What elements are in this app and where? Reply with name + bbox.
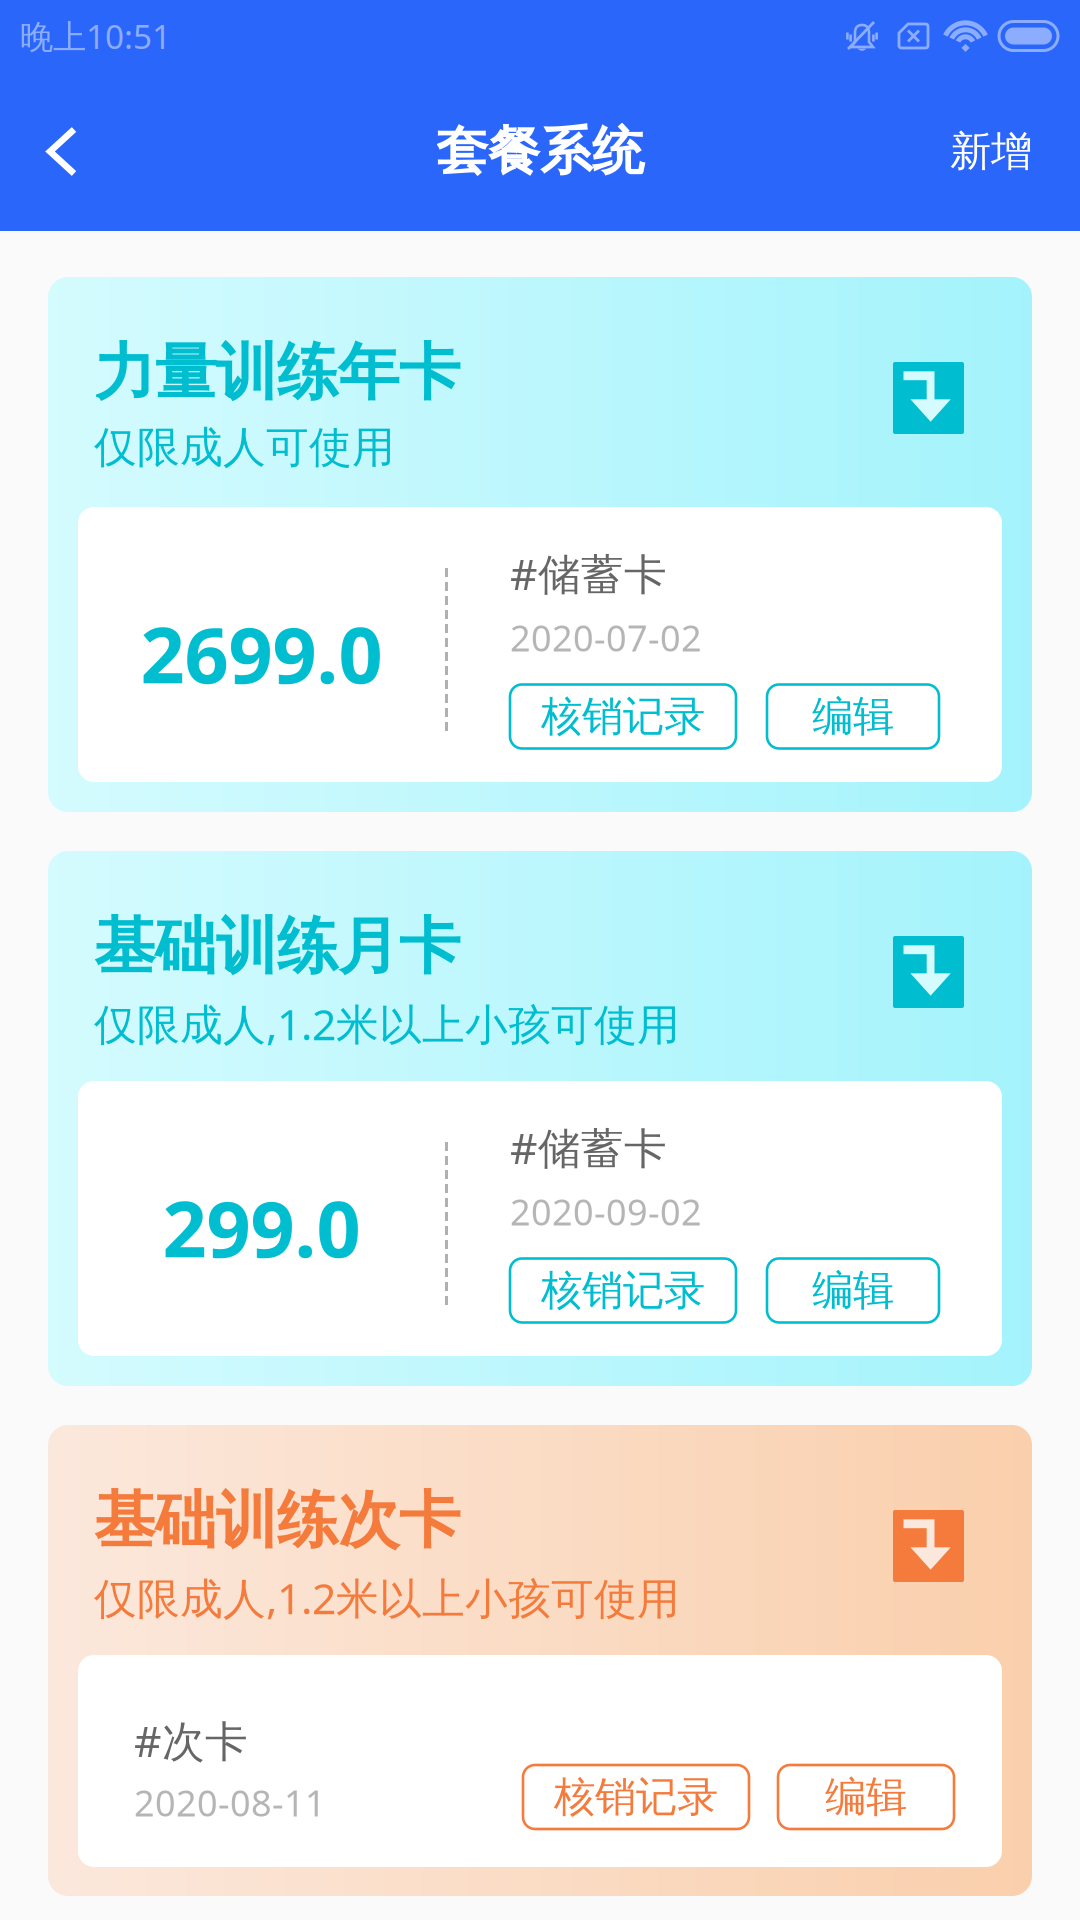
staticText: 套餐系统 (436, 120, 644, 183)
button[interactable]: 核销记录 (510, 1258, 736, 1322)
button[interactable]: 新增 (910, 91, 1080, 211)
staticText: 编辑 (825, 1772, 907, 1822)
staticText: 2020-08-11 (134, 1779, 326, 1826)
staticText: 编辑 (812, 691, 894, 742)
staticText: 核销记录 (541, 691, 705, 742)
staticText: 2020-07-02 (510, 614, 702, 661)
button[interactable]: 核销记录 (523, 1765, 749, 1829)
staticText: 核销记录 (554, 1772, 718, 1822)
staticText: #储蓄卡 (510, 1119, 667, 1176)
staticText: 2699.0 (140, 602, 382, 705)
staticText: 力量训练年卡 (94, 335, 460, 410)
staticText: 2020-09-02 (510, 1188, 702, 1235)
button[interactable]: 核销记录 (510, 684, 736, 748)
staticText: 编辑 (812, 1265, 894, 1316)
staticText: 仅限成人,1.2米以上小孩可使用 (94, 1569, 680, 1626)
button[interactable]: Back (0, 91, 118, 211)
staticText: #次卡 (134, 1712, 248, 1769)
staticText: 仅限成人可使用 (94, 421, 395, 474)
staticText: 299.0 (162, 1176, 360, 1279)
staticText: 晚上10:51 (20, 14, 171, 58)
button[interactable]: 编辑 (778, 1765, 954, 1829)
button[interactable]: 编辑 (767, 1258, 939, 1322)
staticText: #储蓄卡 (510, 545, 667, 602)
button[interactable]: 编辑 (767, 684, 939, 748)
staticText: 仅限成人,1.2米以上小孩可使用 (94, 995, 680, 1052)
staticText: 核销记录 (541, 1265, 705, 1316)
staticText: 新增 (950, 126, 1032, 177)
staticText: 基础训练次卡 (94, 1483, 460, 1558)
staticText: 基础训练月卡 (94, 909, 460, 984)
